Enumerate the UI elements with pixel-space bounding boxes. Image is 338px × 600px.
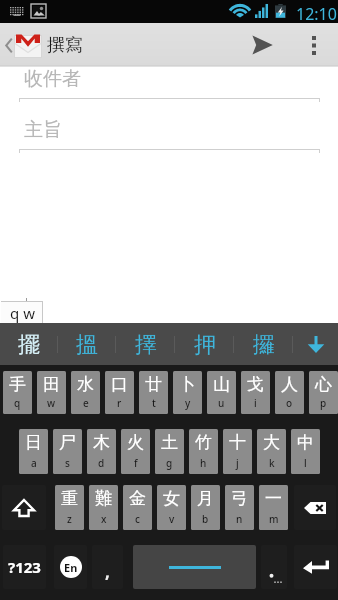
staticText: 弓 — [231, 488, 248, 509]
staticText: o — [286, 396, 293, 410]
button[interactable]: 十 — [223, 429, 252, 474]
staticText: a — [31, 456, 37, 470]
staticText: x — [101, 512, 107, 526]
staticText: k — [269, 456, 275, 470]
button[interactable]: 水 — [71, 371, 100, 414]
staticText: 卜 — [179, 374, 196, 395]
staticText: 金 — [129, 488, 146, 509]
staticText: 木 — [93, 432, 110, 453]
staticText: 一 — [265, 488, 282, 509]
staticText: d — [98, 456, 105, 470]
button[interactable]: 押 — [175, 323, 234, 365]
button[interactable]: 卜 — [173, 371, 202, 414]
staticText: 火 — [127, 432, 144, 453]
staticText: p — [320, 396, 327, 410]
button[interactable]: q w — [1, 301, 43, 323]
button[interactable]: ?123 — [3, 545, 46, 589]
button[interactable]: Period — [261, 545, 287, 589]
button[interactable]: More options — [289, 23, 338, 67]
staticText: g — [166, 456, 173, 470]
staticText: 收件者 — [24, 67, 81, 91]
button[interactable]: 金 — [123, 485, 152, 530]
staticText: 口 — [111, 374, 128, 395]
staticText: s — [65, 456, 70, 470]
staticText: 戈 — [247, 374, 264, 395]
button[interactable]: 搵 — [58, 323, 116, 365]
staticText: u — [218, 396, 225, 410]
button[interactable]: 田 — [37, 371, 66, 414]
staticText: e — [83, 396, 89, 410]
button[interactable]: 攞 — [234, 323, 293, 365]
staticText: w — [47, 396, 56, 410]
staticText: 擇 — [135, 331, 157, 359]
staticText: f — [134, 456, 138, 470]
button[interactable]: 中 — [291, 429, 320, 474]
button[interactable]: 廿 — [139, 371, 168, 414]
button[interactable]: 重 — [55, 485, 84, 530]
staticText: z — [67, 512, 72, 526]
staticText: n — [236, 512, 243, 526]
staticText: 攞 — [253, 331, 275, 359]
button[interactable]: 一 — [259, 485, 288, 530]
staticText: 主旨 — [24, 118, 62, 142]
staticText: 擺 — [18, 331, 40, 359]
staticText: 日 — [25, 432, 42, 453]
button[interactable]: 戈 — [241, 371, 270, 414]
button[interactable]: 竹 — [189, 429, 218, 474]
button[interactable]: 手 — [3, 371, 32, 414]
other: Keyboard notification — [10, 7, 24, 16]
button[interactable]: Space — [133, 545, 256, 589]
button[interactable]: 主旨 — [0, 120, 338, 153]
button[interactable]: 擺 — [0, 323, 58, 365]
button[interactable]: Send — [235, 23, 289, 67]
button[interactable]: 山 — [207, 371, 236, 414]
button[interactable]: 火 — [121, 429, 150, 474]
staticText: r — [117, 396, 122, 410]
button[interactable]: Enter — [294, 545, 337, 589]
staticText: 心 — [315, 374, 332, 395]
button[interactable]: 難 — [89, 485, 118, 530]
button[interactable]: 月 — [191, 485, 220, 530]
staticText: q — [14, 396, 21, 410]
button[interactable]: More candidates — [293, 323, 338, 365]
button[interactable]: Delete — [294, 485, 336, 530]
staticText: 尸 — [59, 432, 76, 453]
staticText: 女 — [163, 488, 180, 509]
staticText: h — [200, 456, 207, 470]
staticText: 難 — [95, 488, 112, 509]
staticText: 山 — [213, 374, 230, 395]
staticText: 人 — [281, 374, 298, 395]
button[interactable]: Shift — [2, 485, 46, 530]
staticText: 撰寫 — [47, 34, 83, 57]
staticText: 重 — [61, 488, 78, 509]
staticText: m — [269, 512, 279, 526]
staticText: c — [135, 512, 140, 526]
button[interactable]: 日 — [19, 429, 48, 474]
button[interactable]: 口 — [105, 371, 134, 414]
button[interactable]: 擇 — [116, 323, 175, 365]
staticText: t — [152, 396, 156, 410]
staticText: 廿 — [145, 374, 162, 395]
button[interactable]: 土 — [155, 429, 184, 474]
button[interactable]: Comma — [92, 545, 123, 589]
button[interactable]: 心 — [309, 371, 338, 414]
button[interactable]: 木 — [87, 429, 116, 474]
button[interactable]: 尸 — [53, 429, 82, 474]
staticText: l — [304, 456, 307, 470]
button[interactable]: 女 — [157, 485, 186, 530]
staticText: i — [254, 396, 257, 410]
button[interactable]: Switch language — [54, 545, 87, 589]
button[interactable]: 弓 — [225, 485, 254, 530]
staticText: ?123 — [8, 557, 41, 577]
button[interactable]: 收件者 — [0, 69, 338, 102]
staticText: 十 — [229, 432, 246, 453]
staticText: , — [105, 560, 110, 583]
staticText: q w — [10, 303, 35, 323]
staticText: 12:10 — [296, 3, 337, 25]
staticText: y — [185, 396, 191, 410]
button[interactable]: 大 — [257, 429, 286, 474]
button[interactable]: Navigate up — [0, 23, 42, 67]
staticText: 田 — [43, 374, 60, 395]
staticText: 搵 — [76, 331, 98, 359]
button[interactable]: 人 — [275, 371, 304, 414]
